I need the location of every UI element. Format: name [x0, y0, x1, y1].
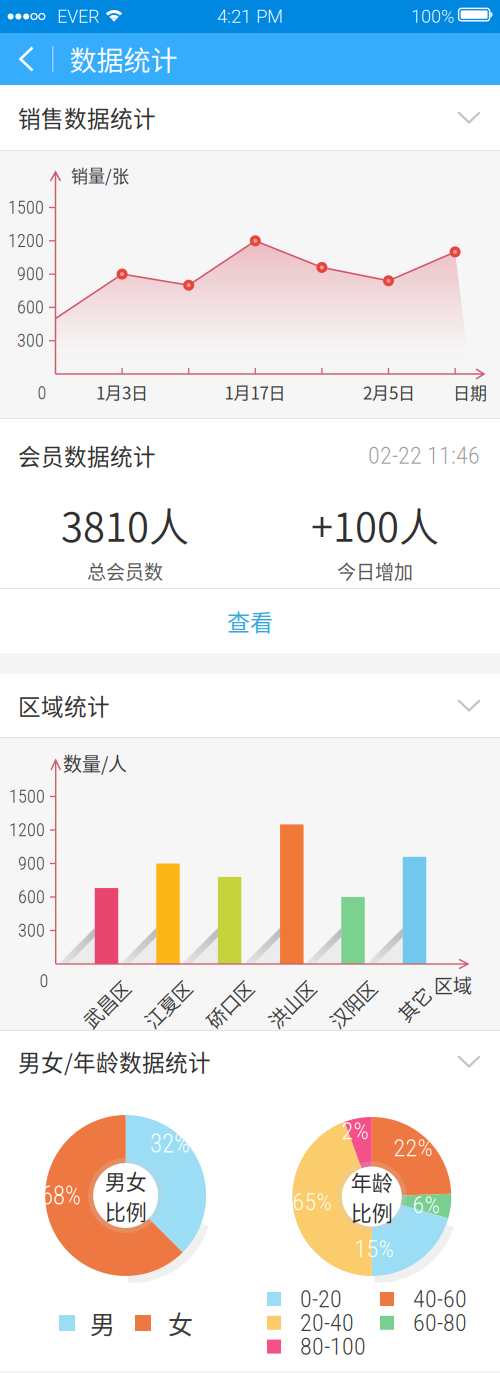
staticText: +100人: [311, 495, 439, 553]
staticText: 4:21 PM: [217, 6, 283, 27]
staticText: 总会员数: [87, 557, 163, 585]
button[interactable]: 男女/年龄数据统计: [0, 1031, 500, 1092]
staticText: 600: [18, 886, 45, 908]
staticText: 20-40: [300, 1309, 354, 1337]
button[interactable]: 查看: [0, 589, 500, 653]
staticText: 汉阳区: [324, 990, 381, 1018]
staticText: 900: [17, 264, 44, 285]
staticText: 1月3日: [96, 380, 148, 404]
staticText: 销量/张: [71, 163, 129, 187]
staticText: 查看: [227, 604, 273, 638]
button[interactable]: Back: [0, 33, 52, 85]
staticText: 0-20: [300, 1285, 342, 1313]
staticText: 其它: [395, 990, 433, 1018]
staticText: 6%: [412, 1191, 439, 1219]
staticText: 22%: [393, 1134, 432, 1162]
staticText: 2%: [341, 1117, 368, 1145]
staticText: 比例: [351, 1196, 393, 1227]
staticText: 洪山区: [263, 990, 320, 1018]
staticText: EVER: [57, 6, 99, 27]
staticText: 女: [168, 1305, 193, 1341]
staticText: 1月17日: [224, 380, 285, 404]
staticText: 0: [37, 382, 46, 404]
staticText: 年龄: [351, 1166, 393, 1196]
staticText: 300: [18, 920, 45, 941]
staticText: 2月5日: [363, 380, 415, 404]
staticText: 0: [39, 970, 48, 992]
staticText: 武昌区: [78, 990, 135, 1018]
staticText: 区域: [434, 971, 472, 999]
staticText: 销售数据统计: [18, 101, 156, 134]
staticText: 600: [17, 297, 44, 318]
staticText: 15%: [354, 1235, 393, 1263]
staticText: 江夏区: [139, 990, 196, 1018]
staticText: 硚口区: [201, 990, 258, 1018]
staticText: 900: [18, 853, 45, 874]
staticText: 比例: [105, 1195, 147, 1226]
staticText: 40-60: [413, 1285, 467, 1313]
staticText: 日期: [453, 380, 487, 404]
staticText: 1200: [9, 819, 45, 841]
staticText: 数据统计: [69, 39, 177, 79]
staticText: 3810人: [61, 495, 189, 553]
staticText: 100%: [411, 6, 454, 27]
staticText: 1500: [9, 786, 45, 807]
staticText: 会员数据统计: [18, 439, 156, 472]
staticText: 65%: [292, 1188, 331, 1216]
staticText: 32%: [150, 1129, 190, 1159]
staticText: 60-80: [413, 1309, 467, 1337]
staticText: 1500: [8, 197, 44, 218]
staticText: 02-22 11:46: [368, 441, 480, 469]
staticText: 1200: [8, 230, 44, 251]
staticText: 今日增加: [337, 557, 413, 585]
button[interactable]: 区域统计: [0, 674, 500, 737]
staticText: 数量/人: [63, 749, 127, 777]
staticText: 300: [17, 330, 44, 351]
staticText: 男: [90, 1305, 115, 1341]
staticText: 区域统计: [18, 689, 110, 722]
staticText: 68%: [41, 1181, 81, 1211]
button[interactable]: 销售数据统计: [0, 85, 500, 150]
staticText: 男女: [105, 1165, 147, 1195]
staticText: 80-100: [300, 1332, 366, 1361]
staticText: 男女/年龄数据统计: [18, 1045, 211, 1078]
